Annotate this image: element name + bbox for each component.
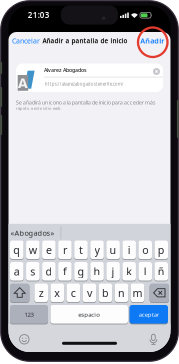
button[interactable]: o	[138, 240, 152, 259]
staticText: l	[144, 264, 147, 278]
staticText: Se añadirá un icono a la pantalla de ini…	[16, 98, 156, 106]
staticText: o	[142, 243, 148, 257]
staticText: p	[158, 243, 165, 257]
button[interactable]: b	[99, 283, 112, 302]
button[interactable]: t	[74, 240, 88, 259]
button[interactable]: j	[106, 262, 120, 281]
staticText: m	[132, 286, 142, 300]
staticText: Cancelar	[12, 36, 40, 45]
staticText: j	[112, 264, 115, 278]
staticText: z	[39, 286, 44, 300]
button[interactable]: f	[58, 262, 72, 281]
button[interactable]: e	[42, 240, 56, 259]
staticText: v	[87, 286, 92, 300]
staticText: 123	[24, 310, 33, 318]
button[interactable]: w	[26, 240, 40, 259]
staticText: Añadir a pantalla de inicio	[42, 36, 127, 45]
staticText: Añadir	[140, 36, 164, 46]
staticText: b	[102, 286, 109, 300]
button[interactable]: Shift	[10, 283, 29, 302]
staticText: h	[93, 264, 100, 278]
button[interactable]: l	[138, 262, 152, 281]
staticText: e	[46, 243, 52, 257]
staticText: i	[128, 243, 131, 257]
button[interactable]: espacio	[50, 305, 128, 324]
staticText: espacio	[78, 310, 100, 318]
button[interactable]: q	[10, 240, 24, 259]
staticText: A	[18, 73, 28, 92]
button[interactable]: 123	[10, 305, 48, 324]
staticText: «Abogados»	[10, 228, 54, 238]
staticText: ñ	[158, 264, 165, 278]
button[interactable]: x	[50, 283, 64, 302]
staticText: d	[45, 264, 52, 278]
button[interactable]: d	[42, 262, 56, 281]
button[interactable]: Clear text	[153, 68, 160, 75]
staticText: r	[63, 243, 67, 257]
staticText: x	[54, 286, 60, 300]
button[interactable]: Añadir	[140, 36, 164, 46]
button[interactable]: n	[115, 283, 128, 302]
button[interactable]: k	[122, 262, 136, 281]
button[interactable]: h	[90, 262, 104, 281]
staticText: y	[94, 243, 99, 257]
staticText: c	[71, 286, 76, 300]
button[interactable]: y	[90, 240, 104, 259]
staticText: g	[77, 264, 84, 278]
staticText: Alvarez Abogados	[44, 66, 87, 74]
staticText: 21:03	[28, 9, 50, 20]
button[interactable]: g	[74, 262, 88, 281]
staticText: https://alvarezabogadostenerife.com/	[45, 81, 124, 87]
button[interactable]: z	[34, 283, 48, 302]
staticText: w	[29, 243, 37, 257]
staticText: s	[30, 264, 35, 278]
button[interactable]: Dictation	[148, 334, 158, 345]
button[interactable]: ñ	[154, 262, 168, 281]
button[interactable]: c	[66, 283, 80, 302]
staticText: t	[79, 243, 83, 257]
button[interactable]: p	[154, 240, 168, 259]
staticText: f	[63, 264, 67, 278]
button[interactable]: u	[106, 240, 120, 259]
staticText: aceptar	[139, 310, 159, 318]
button[interactable]: v	[83, 283, 96, 302]
staticText: rápido a este sitio web.	[16, 105, 62, 111]
staticText: q	[13, 243, 20, 257]
button[interactable]: m	[131, 283, 144, 302]
button[interactable]: Delete	[150, 283, 169, 302]
button[interactable]: i	[122, 240, 136, 259]
button[interactable]: Cancelar	[12, 36, 40, 45]
staticText: a	[14, 264, 20, 278]
button[interactable]: a	[10, 262, 24, 281]
button[interactable]: aceptar	[129, 305, 168, 324]
staticText: n	[118, 286, 125, 300]
staticText: k	[126, 264, 132, 278]
button[interactable]: r	[58, 240, 72, 259]
button[interactable]: s	[26, 262, 40, 281]
staticText: u	[110, 243, 117, 257]
button[interactable]: Emoji	[19, 334, 29, 344]
